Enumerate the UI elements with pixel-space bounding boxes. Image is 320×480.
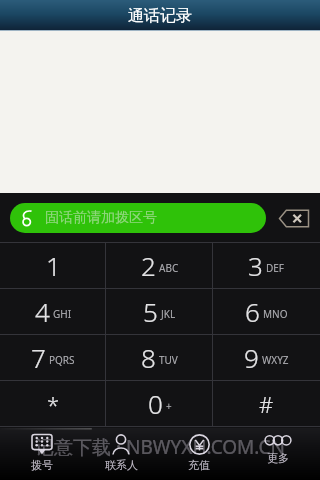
staticText: TUV xyxy=(159,353,178,367)
staticText: 3 xyxy=(248,248,263,283)
staticText: 6 xyxy=(245,294,260,329)
staticText: 1 xyxy=(46,248,61,283)
staticText: 固话前请加拨区号 xyxy=(45,209,157,227)
button[interactable]: * xyxy=(0,381,106,426)
staticText: GHI xyxy=(53,307,72,321)
staticText: 拨号 xyxy=(31,458,53,472)
staticText: 4 xyxy=(35,294,50,329)
button[interactable]: 0 xyxy=(106,381,213,426)
staticText: 联系人 xyxy=(105,458,138,472)
staticText: + xyxy=(166,399,172,413)
staticText: DEF xyxy=(266,261,285,275)
staticText: 记意下载 · NBWYXH.COM.CN xyxy=(0,434,320,460)
button[interactable]: 充值 xyxy=(162,428,236,480)
staticText: # xyxy=(259,389,274,419)
staticText: 通话记录 xyxy=(128,6,192,26)
staticText: ABC xyxy=(159,261,179,275)
staticText: PQRS xyxy=(49,353,75,367)
button[interactable]: 更多 xyxy=(241,428,315,480)
button[interactable]: 8 xyxy=(106,335,213,380)
button[interactable]: 2 xyxy=(106,243,213,288)
staticText: 充值 xyxy=(188,458,210,472)
button[interactable]: 9 xyxy=(213,335,320,380)
staticText: 更多 xyxy=(267,451,289,465)
button[interactable]: Delete xyxy=(274,203,314,233)
button[interactable]: 7 xyxy=(0,335,106,380)
staticText: 5 xyxy=(143,294,158,329)
staticText: 9 xyxy=(244,340,259,375)
staticText: 2 xyxy=(141,248,156,283)
staticText: 8 xyxy=(141,340,156,375)
button[interactable]: 3 xyxy=(213,243,320,288)
staticText: WXYZ xyxy=(262,353,289,367)
button[interactable]: 5 xyxy=(106,289,213,334)
button[interactable]: 固话前请加拨区号 xyxy=(10,203,266,233)
staticText: 0 xyxy=(148,386,163,421)
button[interactable]: 4 xyxy=(0,289,106,334)
button[interactable]: 拨号 xyxy=(5,428,79,480)
button[interactable]: 1 xyxy=(0,243,106,288)
button[interactable]: 联系人 xyxy=(84,428,158,480)
staticText: * xyxy=(47,389,60,419)
staticText: MNO xyxy=(263,307,288,321)
button[interactable]: 6 xyxy=(213,289,320,334)
staticText: JKL xyxy=(161,307,176,321)
button[interactable]: # xyxy=(213,381,320,426)
staticText: 7 xyxy=(31,340,46,375)
